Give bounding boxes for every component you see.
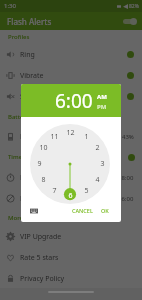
button[interactable]: 10: [36, 141, 50, 155]
button[interactable]: CANCEL: [70, 205, 95, 216]
staticText: 12: [66, 128, 75, 138]
staticText: Battery: [8, 113, 30, 121]
button[interactable]: Ring: [0, 44, 142, 65]
button[interactable]: Switch to keyboard input: [28, 205, 40, 217]
staticText: 82%: [129, 3, 139, 10]
button[interactable]: 9: [32, 157, 46, 171]
staticText: More: [8, 214, 24, 222]
staticText: PM: [97, 103, 107, 111]
button[interactable]: 5: [79, 184, 93, 198]
staticText: Privacy Policy: [20, 274, 65, 284]
staticText: 9: [37, 159, 42, 169]
button[interactable]: 4: [90, 173, 104, 187]
staticText: 4: [95, 175, 100, 185]
button[interactable]: Silent: [0, 86, 142, 107]
staticText: Vibrate: [20, 71, 44, 81]
button[interactable]: Privacy Policy: [0, 268, 142, 289]
button[interactable]: Enable flash alerts: [121, 15, 137, 27]
staticText: 7: [52, 186, 57, 196]
staticText: 43%: [122, 133, 134, 141]
staticText: 5: [84, 186, 89, 196]
staticText: AM: [97, 93, 107, 101]
button[interactable]: Battery saver: [0, 126, 142, 147]
button[interactable]: Do not disturb from: [0, 167, 142, 188]
staticText: Do not disturb from: [20, 173, 86, 183]
button[interactable]: 3: [95, 157, 109, 171]
staticText: Rate 5 stars: [20, 253, 59, 263]
staticText: Battery saver: [20, 132, 64, 142]
staticText: 06:00: [118, 195, 134, 203]
button[interactable]: 2: [90, 141, 104, 155]
button[interactable]: Vibrate: [0, 65, 142, 86]
staticText: 10: [39, 143, 48, 153]
staticText: 2: [95, 143, 100, 153]
button[interactable]: PM: [97, 103, 107, 111]
staticText: 6: [68, 191, 73, 201]
button[interactable]: OK: [99, 205, 111, 216]
button[interactable]: 6: [63, 189, 77, 203]
button[interactable]: 6:00: [55, 88, 93, 114]
staticText: 11: [50, 132, 59, 142]
staticText: OK: [101, 207, 109, 214]
staticText: 3: [100, 159, 105, 169]
button[interactable]: 11: [47, 130, 61, 144]
staticText: 8: [41, 175, 46, 185]
button[interactable]: Timer: [0, 147, 142, 167]
staticText: Profiles: [8, 33, 30, 41]
button[interactable]: Rate 5 stars: [0, 247, 142, 268]
staticText: 1:30: [4, 2, 16, 10]
staticText: 6:00: [55, 88, 93, 114]
staticText: 18:00: [118, 174, 134, 182]
button[interactable]: 1: [79, 130, 93, 144]
button[interactable]: 7: [47, 184, 61, 198]
staticText: Do not disturb to: [20, 194, 77, 204]
button[interactable]: 12: [63, 126, 77, 140]
button[interactable]: AM: [97, 93, 107, 101]
staticText: Silent: [20, 92, 39, 102]
staticText: Flash Alerts: [7, 16, 52, 27]
staticText: VIP Upgrade: [20, 232, 62, 242]
staticText: 1: [84, 132, 89, 142]
staticText: CANCEL: [72, 207, 93, 214]
button[interactable]: Do not disturb to: [0, 188, 142, 209]
button[interactable]: VIP Upgrade: [0, 226, 142, 247]
button[interactable]: 8: [36, 173, 50, 187]
staticText: Ring: [20, 50, 35, 60]
staticText: Timer: [8, 153, 25, 161]
